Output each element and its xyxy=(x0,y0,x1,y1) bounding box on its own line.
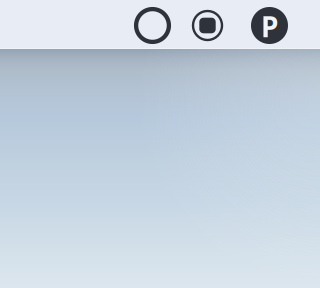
staticText: P xyxy=(261,8,278,45)
button[interactable]: Pause xyxy=(247,1,292,50)
button[interactable]: Stop xyxy=(185,1,230,50)
button[interactable]: Record xyxy=(130,1,175,50)
